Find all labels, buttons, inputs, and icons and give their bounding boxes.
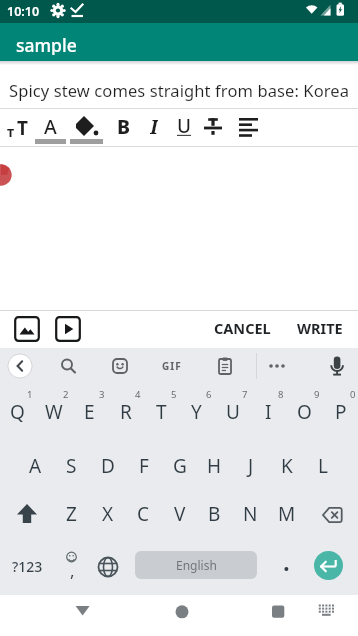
staticText: sample	[16, 33, 77, 55]
staticText: F	[139, 453, 149, 479]
staticText: 10:10	[7, 3, 40, 20]
staticText: 8	[278, 388, 284, 400]
button[interactable]: G	[162, 444, 197, 488]
button[interactable]	[12, 314, 42, 344]
staticText: X	[102, 501, 114, 527]
button[interactable]: V	[162, 492, 197, 536]
button[interactable]	[66, 599, 97, 630]
staticText: D	[101, 453, 115, 479]
staticText: N	[243, 501, 258, 527]
staticText: T	[17, 115, 28, 139]
button[interactable]	[89, 546, 127, 588]
staticText: ,	[70, 559, 75, 582]
button[interactable]: Q	[0, 390, 35, 434]
staticText: Q	[10, 399, 25, 425]
staticText: CANCEL	[214, 318, 271, 338]
staticText: G	[173, 453, 187, 479]
staticText: W	[45, 399, 63, 425]
button[interactable]: GIF	[154, 356, 190, 376]
staticText: R	[120, 399, 132, 425]
button[interactable]: X	[90, 492, 125, 536]
staticText: P	[335, 399, 347, 425]
staticText: WRITE	[297, 318, 343, 338]
staticText: U	[226, 399, 240, 425]
button[interactable]: J	[233, 444, 268, 488]
button[interactable]: L	[305, 444, 340, 488]
button[interactable]: R	[108, 390, 143, 434]
button[interactable]: Spicy stew comes straight from base: Kor…	[9, 78, 353, 102]
staticText: ?123	[12, 557, 43, 576]
button[interactable]	[314, 551, 343, 580]
staticText: A	[29, 453, 42, 479]
button[interactable]	[238, 114, 264, 140]
button[interactable]	[8, 354, 32, 378]
staticText: Y	[191, 399, 202, 425]
staticText: 7	[242, 388, 248, 400]
staticText: 9	[314, 388, 320, 400]
staticText: 1	[27, 388, 33, 400]
button[interactable]: D	[90, 444, 125, 488]
button[interactable]: T	[144, 390, 179, 434]
button[interactable]: Y	[179, 390, 214, 434]
staticText: English	[176, 557, 217, 573]
button[interactable]: P	[323, 390, 358, 434]
button[interactable]: A	[37, 113, 63, 139]
button[interactable]	[262, 351, 292, 381]
button[interactable]	[164, 599, 195, 630]
button[interactable]: English	[135, 551, 257, 579]
staticText: т	[7, 122, 15, 140]
button[interactable]: CANCEL	[204, 316, 280, 340]
button[interactable]: A	[18, 444, 53, 488]
staticText: 0	[350, 388, 356, 400]
button[interactable]	[105, 351, 135, 381]
button[interactable]: K	[269, 444, 304, 488]
staticText: B	[208, 501, 221, 527]
staticText: 3	[99, 388, 105, 400]
staticText: Z	[66, 501, 77, 527]
button[interactable]	[307, 599, 338, 630]
staticText: J	[248, 453, 254, 479]
staticText: U	[177, 113, 192, 139]
button[interactable]	[5, 114, 31, 140]
button[interactable]: H	[197, 444, 232, 488]
staticText: I	[265, 399, 272, 425]
staticText: I	[150, 113, 158, 139]
button[interactable]: Z	[54, 492, 89, 536]
button[interactable]: B	[197, 492, 232, 536]
button[interactable]	[270, 546, 303, 586]
button[interactable]: F	[126, 444, 161, 488]
button[interactable]: I	[143, 113, 165, 139]
button[interactable]: C	[126, 492, 161, 536]
button[interactable]: U	[215, 390, 250, 434]
button[interactable]: M	[269, 492, 304, 536]
button[interactable]	[52, 351, 82, 381]
staticText: O	[297, 399, 312, 425]
button[interactable]: B	[111, 113, 137, 139]
staticText: 2	[63, 388, 69, 400]
staticText: K	[281, 453, 293, 479]
button[interactable]: W	[36, 390, 71, 434]
button[interactable]: U	[172, 113, 196, 139]
button[interactable]: ?123	[3, 546, 51, 586]
button[interactable]	[54, 546, 90, 588]
button[interactable]: O	[287, 390, 322, 434]
button[interactable]: E	[72, 390, 107, 434]
button[interactable]	[53, 314, 83, 344]
button[interactable]: S	[54, 444, 89, 488]
staticText: A	[44, 113, 57, 139]
staticText: H	[207, 453, 222, 479]
button[interactable]	[7, 495, 47, 535]
button[interactable]: N	[233, 492, 268, 536]
button[interactable]	[261, 599, 292, 630]
button[interactable]	[322, 351, 352, 381]
button[interactable]	[73, 114, 99, 140]
staticText: M	[278, 501, 296, 527]
button[interactable]	[311, 495, 351, 535]
button[interactable]: I	[251, 390, 286, 434]
staticText: GIF	[162, 359, 182, 373]
staticText: 5	[171, 388, 177, 400]
button[interactable]	[201, 114, 226, 140]
staticText: V	[174, 501, 186, 527]
button[interactable]: WRITE	[288, 316, 352, 340]
button[interactable]	[210, 351, 240, 381]
